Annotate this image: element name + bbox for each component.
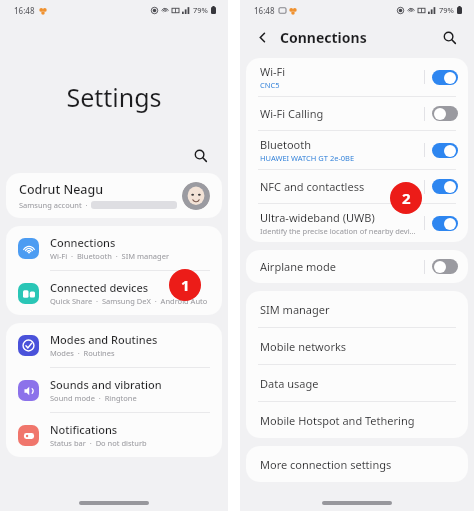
staticText: Data usage	[260, 376, 319, 391]
staticText: Identify the precise location of nearby …	[260, 226, 418, 236]
staticText: Wi-Fi Calling	[260, 106, 324, 121]
staticText: NFC and contactless payments	[260, 179, 418, 194]
staticText: SIM manager	[260, 302, 330, 317]
button[interactable]: Wi-Fi Calling	[246, 97, 468, 130]
button[interactable]: Wi-Fi	[246, 58, 468, 96]
staticText: Sounds and vibration	[50, 377, 162, 392]
button[interactable]: Codrut Neagu	[6, 173, 222, 218]
button[interactable]: Data usage	[246, 365, 468, 401]
staticText: Notifications	[50, 422, 118, 437]
button[interactable]: Modes and Routines	[6, 323, 222, 367]
staticText: Mobile Hotspot and Tethering	[260, 413, 415, 428]
staticText: Airplane mode	[260, 259, 336, 274]
staticText: Bluetooth	[260, 137, 312, 152]
staticText: Samsung account ·	[19, 200, 88, 210]
staticText: Sound mode · Ringtone	[50, 393, 137, 403]
staticText: HUAWEI WATCH GT 2e-0BE	[260, 153, 355, 163]
staticText: More connection settings	[260, 457, 392, 472]
staticText: Connected devices	[50, 280, 149, 295]
staticText: 79%	[193, 5, 208, 15]
button[interactable]: On	[432, 143, 458, 158]
staticText: 16:48	[14, 5, 35, 16]
staticText: Wi-Fi · Bluetooth · SIM manager	[50, 251, 169, 261]
staticText: Status bar · Do not disturb	[50, 438, 147, 448]
button[interactable]: Mobile Hotspot and Tethering	[246, 402, 468, 438]
button[interactable]: Back	[252, 27, 272, 47]
staticText: Ultra-wideband (UWB)	[260, 210, 375, 225]
staticText: CNC5	[260, 80, 280, 90]
staticText: Modes and Routines	[50, 332, 158, 347]
button[interactable]: NFC and contactless payments	[246, 170, 468, 203]
staticText: 79%	[439, 5, 454, 15]
button[interactable]: Airplane mode	[246, 250, 468, 283]
button[interactable]: On	[432, 179, 458, 194]
button[interactable]: SIM manager	[246, 291, 468, 327]
button[interactable]: Off	[432, 106, 458, 121]
button[interactable]: On	[432, 70, 458, 85]
staticText: Quick Share · Samsung DeX · Android Auto	[50, 296, 208, 306]
staticText: Connections	[50, 235, 116, 250]
button[interactable]: Mobile networks	[246, 328, 468, 364]
staticText: Modes · Routines	[50, 348, 115, 358]
staticText: Codrut Neagu	[19, 181, 104, 198]
button[interactable]: Ultra-wideband (UWB)	[246, 204, 468, 242]
button[interactable]: Connected devices	[6, 271, 222, 315]
button[interactable]: More connection settings	[246, 446, 468, 482]
button[interactable]: Off	[432, 259, 458, 274]
button[interactable]: Notifications	[6, 413, 222, 457]
staticText: 16:48	[254, 5, 275, 16]
staticText: Mobile networks	[260, 339, 347, 354]
staticText: 2	[402, 188, 411, 208]
button[interactable]: Connections	[6, 226, 222, 270]
staticText: Connections	[280, 28, 367, 47]
button[interactable]: Sounds and vibration	[6, 368, 222, 412]
button[interactable]: Search	[438, 26, 460, 48]
staticText: 1	[181, 275, 190, 295]
button[interactable]: Search settings	[188, 143, 212, 167]
staticText: Wi-Fi	[260, 64, 286, 79]
staticText: Settings	[0, 80, 228, 114]
button[interactable]: Bluetooth	[246, 131, 468, 169]
button[interactable]: On	[432, 216, 458, 231]
